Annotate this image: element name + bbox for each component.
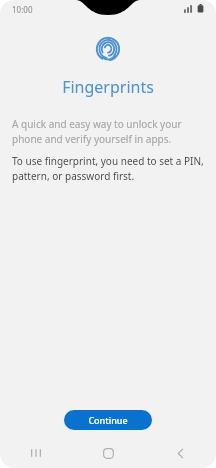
staticText: 10:00 [12,4,33,15]
staticText: A quick and easy way to unlock your phon… [12,117,204,146]
staticText: Continue [88,414,128,426]
button[interactable]: Back [144,438,216,468]
staticText: Fingerprints [62,76,154,98]
staticText: To use fingerprint, you need to set a PI… [12,154,204,183]
button[interactable]: Continue [64,410,152,430]
other: Fingerprint [95,36,121,62]
button[interactable]: Home [72,438,144,468]
button[interactable]: Recent apps [0,438,72,468]
